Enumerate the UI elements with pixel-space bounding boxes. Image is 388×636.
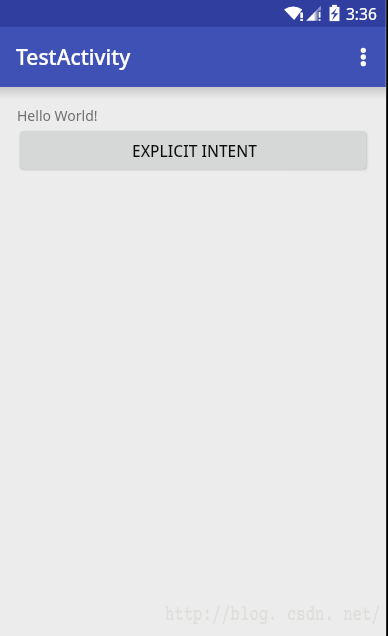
staticText: TestActivity — [16, 43, 131, 72]
staticText: EXPLICIT INTENT — [132, 140, 257, 161]
staticText: http://blog. csdn. net/ — [165, 604, 381, 628]
staticText: Hello World! — [17, 106, 98, 125]
button[interactable]: More options — [338, 33, 386, 81]
button[interactable]: EXPLICIT INTENT — [20, 131, 366, 169]
staticText: 3:36 — [346, 3, 377, 24]
